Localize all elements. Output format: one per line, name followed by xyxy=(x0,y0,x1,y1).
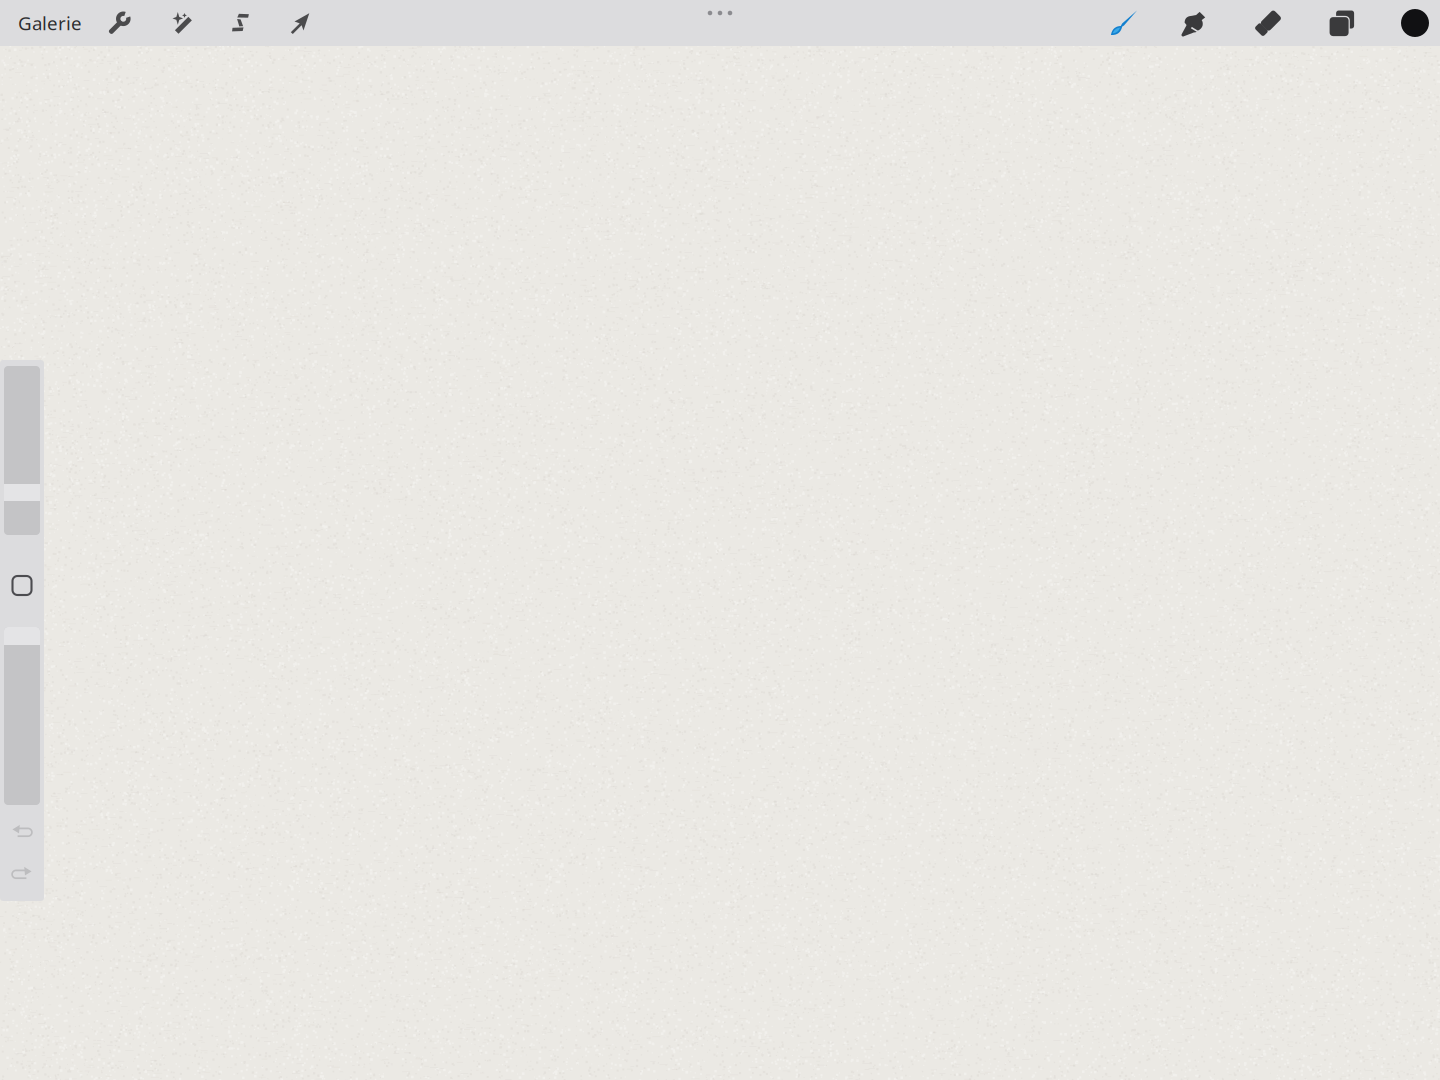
button[interactable]: Brush size xyxy=(0,366,44,535)
button[interactable]: Transform xyxy=(270,0,329,46)
button[interactable]: Actions xyxy=(90,0,150,46)
button[interactable]: Modify xyxy=(0,576,44,595)
button[interactable]: Erase xyxy=(1231,0,1305,46)
button[interactable]: More xyxy=(685,1,755,25)
button[interactable]: Smudge xyxy=(1158,0,1231,46)
button[interactable]: Redo xyxy=(0,865,44,882)
button[interactable]: Selection xyxy=(211,0,270,46)
button[interactable]: Opacity xyxy=(0,627,44,805)
button[interactable]: Color xyxy=(1390,0,1440,46)
staticText: Galerie xyxy=(18,11,82,35)
button[interactable]: Adjustments xyxy=(150,0,211,46)
button[interactable]: Paint xyxy=(1084,0,1158,46)
button[interactable]: Layers xyxy=(1305,0,1378,46)
button[interactable]: Undo xyxy=(0,823,44,840)
button[interactable]: Galerie xyxy=(10,0,90,46)
